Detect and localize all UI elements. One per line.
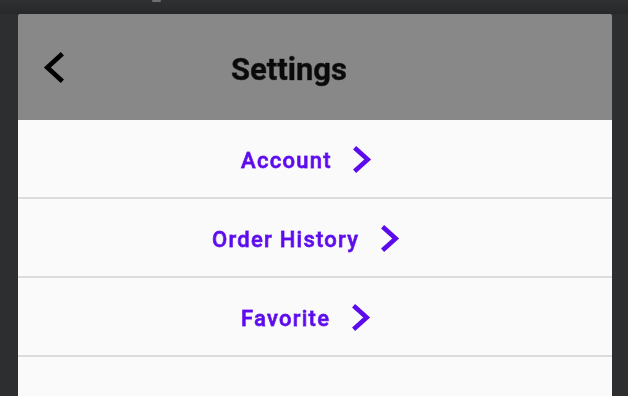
staticText: Account (241, 148, 332, 174)
staticText: Favorite (241, 306, 331, 332)
staticText: Favorite (241, 306, 331, 332)
staticText: Settings (231, 51, 348, 87)
staticText: Settings (231, 51, 348, 87)
staticText: Order History (212, 227, 360, 253)
staticText: Account (241, 148, 332, 174)
staticText: Order History (212, 227, 360, 253)
button[interactable]: Account (18, 120, 612, 197)
button[interactable]: Order History (18, 199, 612, 276)
button[interactable]: Navigate back (31, 44, 77, 90)
button[interactable]: Favorite (18, 278, 612, 355)
